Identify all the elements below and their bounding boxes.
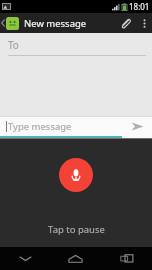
button[interactable]: To [0,33,152,56]
button[interactable]: Home [50,247,101,270]
button[interactable]: Recent apps [101,247,152,270]
staticText: Type message [8,120,72,133]
staticText: 18:01 [129,1,150,12]
staticText: New message [24,17,114,30]
button[interactable]: Send [122,117,152,136]
button[interactable]: More options [136,13,152,33]
staticText: To [8,38,19,52]
button[interactable]: Type message [0,117,122,136]
staticText: Tap to pause [48,223,105,236]
button[interactable]: Back [0,247,50,270]
button[interactable]: Attach [114,13,136,33]
button[interactable]: Navigate up [0,13,21,33]
button[interactable]: Pause recording [59,158,93,192]
